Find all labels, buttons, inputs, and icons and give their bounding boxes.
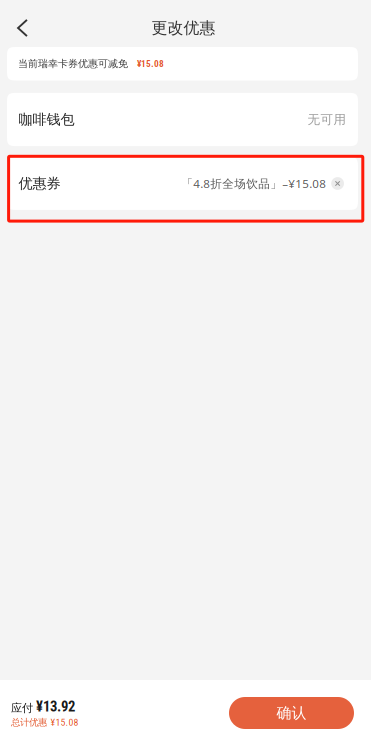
staticText: ¥15.08 — [137, 58, 164, 69]
staticText: 当前瑞幸卡券优惠可减免 — [18, 57, 128, 70]
staticText: 「4.8折全场饮品」–¥15.08 — [181, 176, 326, 191]
staticText: ¥13.92 — [36, 698, 75, 715]
button[interactable]: 确认 — [229, 697, 354, 729]
staticText: 优惠券 — [18, 175, 60, 192]
staticText: 确认 — [276, 704, 306, 722]
button[interactable]: 优惠券 — [0, 153, 371, 224]
staticText: 无可用 — [307, 112, 346, 127]
button[interactable]: Back — [0, 9, 42, 47]
staticText: 总计优惠 — [11, 716, 47, 728]
staticText: 咖啡钱包 — [18, 111, 74, 128]
staticText: 应付 — [11, 701, 33, 715]
staticText: ¥15.08 — [50, 717, 78, 728]
staticText: 更改优惠 — [151, 18, 215, 38]
button[interactable]: 咖啡钱包 — [0, 93, 371, 146]
